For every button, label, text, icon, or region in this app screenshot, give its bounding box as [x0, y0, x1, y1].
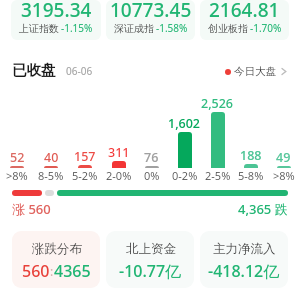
staticText: 560 [22, 260, 50, 282]
staticText: 创业板指 [208, 22, 248, 35]
staticText: 52 [10, 149, 25, 166]
button[interactable]: 北上资金 [106, 231, 194, 288]
button[interactable]: 涨跌分布 [12, 231, 100, 288]
staticText: 涨跌分布 [32, 241, 82, 257]
staticText: 311 [108, 144, 130, 161]
staticText: 0-2% [172, 168, 198, 183]
staticText: 主力净流入 [213, 241, 276, 257]
staticText: 0% [144, 168, 160, 183]
staticText: -10.77亿 [119, 260, 182, 282]
staticText: -1.58% [156, 21, 188, 35]
staticText: 5-2% [72, 168, 98, 183]
staticText: 4,365 跌 [238, 200, 288, 218]
staticText: 10773.45 [110, 0, 192, 23]
staticText: >8% [273, 168, 295, 183]
staticText: 49 [276, 149, 291, 166]
staticText: -1.70% [250, 21, 282, 35]
staticText: 5-8% [238, 168, 264, 183]
staticText: 2,526 [201, 95, 234, 112]
staticText: 4365 [54, 260, 91, 282]
staticText: 2164.81 [209, 0, 280, 23]
staticText: 157 [74, 148, 96, 165]
staticText: 76 [144, 149, 159, 166]
staticText: 8-5% [38, 168, 64, 183]
staticText: 3195.34 [21, 0, 92, 23]
staticText: -418.12亿 [208, 260, 280, 282]
button[interactable]: 主力净流入 [200, 231, 288, 288]
button[interactable]: 2164.81 [200, 0, 289, 40]
staticText: : [50, 263, 54, 279]
staticText: -1.15% [61, 21, 93, 35]
other: Open today's market [280, 66, 288, 77]
staticText: 北上资金 [126, 241, 176, 257]
staticText: 上证指数 [19, 22, 59, 35]
staticText: 2-0% [106, 168, 132, 183]
staticText: 涨 560 [12, 200, 51, 218]
staticText: 2-5% [205, 168, 231, 183]
staticText: 1,602 [168, 115, 201, 132]
staticText: 已收盘 [12, 61, 56, 79]
staticText: 188 [240, 147, 262, 164]
button[interactable]: 10773.45 [106, 0, 195, 40]
staticText: 深证成指 [114, 22, 154, 35]
staticText: 今日大盘 [234, 65, 276, 78]
button[interactable]: 3195.34 [11, 0, 101, 40]
button[interactable]: 今日大盘 [225, 65, 288, 78]
staticText: >8% [6, 168, 28, 183]
staticText: 06-06 [66, 64, 93, 78]
staticText: 40 [44, 149, 59, 166]
